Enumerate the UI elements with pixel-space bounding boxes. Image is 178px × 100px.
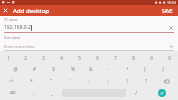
button[interactable]: 3: [34, 52, 52, 63]
button[interactable]: Backspace: [155, 75, 178, 87]
staticText: 6: [96, 55, 99, 61]
button[interactable]: ?: [136, 75, 155, 87]
button[interactable]: 0: [160, 52, 178, 63]
staticText: 2: [24, 55, 27, 61]
staticText: 4: [60, 55, 63, 61]
button[interactable]: @: [6, 63, 25, 75]
staticText: Enter more time: [4, 44, 35, 49]
staticText: ): [162, 66, 164, 72]
staticText: #: [33, 66, 36, 72]
staticText: 7: [114, 55, 117, 61]
button[interactable]: $: [44, 63, 63, 75]
button[interactable]: 7: [106, 52, 124, 63]
staticText: :: [88, 78, 90, 84]
staticText: ': [69, 78, 71, 84]
button[interactable]: &: [82, 63, 100, 75]
button[interactable]: ): [154, 63, 172, 75]
button[interactable]: =\<: [0, 75, 22, 87]
button[interactable]: (: [136, 63, 154, 75]
staticText: *: [30, 78, 33, 84]
staticText: %: [71, 66, 75, 72]
staticText: +: [126, 66, 129, 72]
staticText: ,: [33, 90, 35, 96]
button[interactable]: 1: [0, 52, 17, 63]
button[interactable]: Enter: [145, 87, 178, 99]
button[interactable]: ABC: [0, 87, 25, 99]
staticText: 3: [42, 55, 45, 61]
button[interactable]: 6: [88, 52, 106, 63]
staticText: Add desktop: [13, 7, 50, 15]
button[interactable]: ;: [98, 75, 117, 87]
staticText: 1: [7, 55, 10, 61]
staticText: ABC: [10, 91, 16, 95]
button[interactable]: /: [127, 87, 145, 99]
button[interactable]: Enter more time: [0, 43, 178, 51]
staticText: 9: [150, 55, 153, 61]
button[interactable]: 9: [142, 52, 160, 63]
button[interactable]: 5: [70, 52, 88, 63]
button[interactable]: 8: [124, 52, 142, 63]
staticText: !: [126, 78, 128, 84]
staticText: SAVE: [162, 8, 173, 14]
staticText: -: [108, 66, 110, 72]
staticText: &: [89, 66, 93, 72]
staticText: /: [135, 90, 137, 96]
button[interactable]: 2: [17, 52, 34, 63]
staticText: @: [13, 66, 18, 72]
button[interactable]: 4: [52, 52, 70, 63]
other: Dropdown: [168, 43, 174, 49]
button[interactable]: SAVE: [157, 5, 178, 16]
button[interactable]: +: [118, 63, 136, 75]
staticText: (: [144, 66, 146, 72]
staticText: =\<: [9, 79, 14, 83]
button[interactable]: ": [41, 75, 60, 87]
staticText: 0: [168, 55, 171, 61]
staticText: ": [50, 78, 52, 84]
button[interactable]: Clear: [167, 24, 174, 31]
button[interactable]: _: [43, 87, 61, 99]
staticText: 192.168.0.2: [4, 24, 31, 31]
staticText: $: [52, 66, 55, 72]
staticText: 5: [78, 55, 81, 61]
button[interactable]: *: [22, 75, 41, 87]
button[interactable]: Close: [0, 5, 11, 16]
button[interactable]: %: [63, 63, 82, 75]
staticText: ?: [145, 78, 147, 84]
staticText: ;: [107, 78, 109, 84]
staticText: _: [51, 90, 53, 96]
button[interactable]: PC name: [0, 18, 178, 33]
staticText: 8: [132, 55, 135, 61]
button[interactable]: !: [117, 75, 136, 87]
staticText: 10:54: [167, 0, 176, 5]
staticText: PC name: [4, 18, 18, 22]
staticText: User name: [4, 36, 21, 40]
button[interactable]: #: [25, 63, 44, 75]
